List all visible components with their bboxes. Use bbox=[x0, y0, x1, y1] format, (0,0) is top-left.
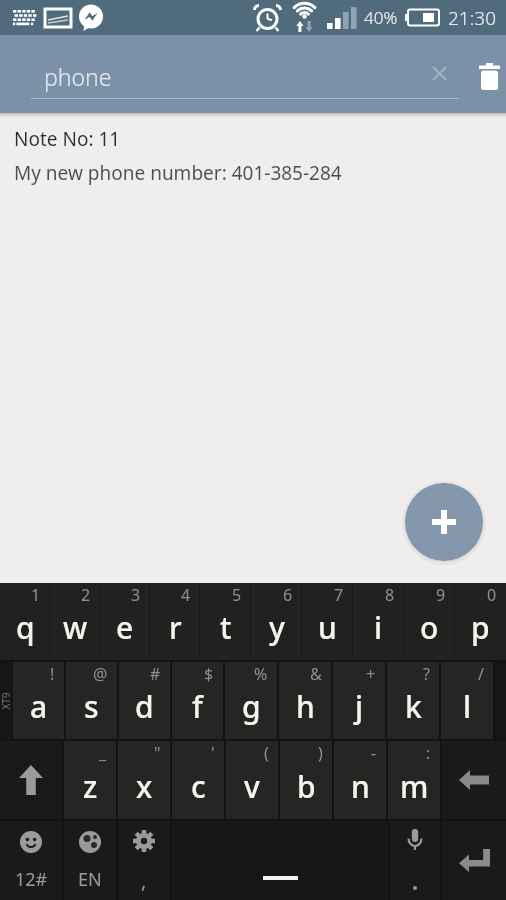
button[interactable]: 3 bbox=[100, 583, 150, 660]
staticText: $ bbox=[204, 663, 214, 685]
staticText: & bbox=[310, 663, 322, 685]
staticText: Note No: 11 bbox=[14, 126, 121, 152]
staticText: 6 bbox=[283, 584, 293, 606]
staticText: EN bbox=[78, 867, 102, 892]
staticText: u bbox=[318, 607, 337, 648]
staticText: " bbox=[154, 742, 161, 764]
staticText: 9 bbox=[436, 584, 446, 606]
staticText: @ bbox=[93, 663, 108, 685]
staticText: 21:30 bbox=[448, 5, 497, 31]
staticText: 0 bbox=[487, 584, 497, 606]
button[interactable] bbox=[474, 61, 504, 91]
button[interactable]: ( bbox=[226, 741, 278, 819]
staticText: / bbox=[478, 663, 484, 685]
button[interactable]: @ bbox=[66, 662, 117, 739]
button[interactable]: 9 bbox=[404, 583, 455, 660]
staticText: x bbox=[136, 766, 153, 807]
button[interactable]: 6 bbox=[251, 583, 302, 660]
staticText: # bbox=[150, 663, 161, 685]
staticText: : bbox=[426, 742, 431, 764]
staticText: p bbox=[471, 607, 490, 648]
staticText: % bbox=[254, 663, 268, 685]
staticText: ( bbox=[264, 742, 269, 764]
staticText: 5 bbox=[232, 584, 242, 606]
button[interactable]: / bbox=[441, 662, 493, 739]
staticText: e bbox=[116, 607, 134, 648]
button[interactable]: 8 bbox=[353, 583, 404, 660]
button[interactable]: ! bbox=[13, 662, 64, 739]
staticText: ' bbox=[211, 742, 215, 764]
button[interactable]: $ bbox=[172, 662, 223, 739]
button[interactable]: 7 bbox=[302, 583, 353, 660]
staticText: t bbox=[220, 607, 232, 648]
button[interactable] bbox=[442, 821, 506, 900]
button[interactable]: 0 bbox=[455, 583, 506, 660]
staticText: b bbox=[297, 766, 316, 807]
button[interactable]: EN bbox=[64, 821, 116, 900]
button[interactable]: " bbox=[118, 741, 170, 819]
staticText: 7 bbox=[334, 584, 344, 606]
button[interactable]: _ bbox=[64, 741, 116, 819]
staticText: r bbox=[169, 607, 182, 648]
button[interactable]: 1 bbox=[0, 583, 50, 660]
staticText: q bbox=[16, 607, 35, 648]
staticText: My new phone number: 401-385-284 bbox=[14, 160, 342, 186]
button[interactable]: 5 bbox=[200, 583, 251, 660]
staticText: 4 bbox=[181, 584, 191, 606]
button[interactable]: , bbox=[118, 821, 170, 900]
staticText: l bbox=[463, 686, 472, 727]
staticText: s bbox=[84, 686, 99, 727]
staticText: g bbox=[242, 686, 261, 727]
button[interactable]: & bbox=[279, 662, 331, 739]
button[interactable]: # bbox=[119, 662, 170, 739]
staticText: h bbox=[296, 686, 315, 727]
staticText: v bbox=[244, 766, 260, 807]
button[interactable]: 4 bbox=[150, 583, 200, 660]
button[interactable] bbox=[172, 821, 388, 900]
button[interactable]: ) bbox=[280, 741, 332, 819]
staticText: XT9 bbox=[0, 686, 13, 716]
staticText: ? bbox=[423, 663, 430, 685]
staticText: 2 bbox=[81, 584, 91, 606]
staticText: + bbox=[366, 663, 376, 685]
staticText: 8 bbox=[385, 584, 395, 606]
button[interactable] bbox=[405, 483, 483, 561]
staticText: a bbox=[30, 686, 48, 727]
staticText: _ bbox=[99, 742, 107, 764]
staticText: o bbox=[420, 607, 439, 648]
staticText: - bbox=[371, 742, 377, 764]
staticText: ) bbox=[318, 742, 323, 764]
staticText: k bbox=[405, 686, 422, 727]
staticText: 40% bbox=[364, 6, 398, 29]
button[interactable] bbox=[0, 741, 62, 819]
button[interactable]: ' bbox=[172, 741, 224, 819]
staticText: n bbox=[351, 766, 370, 807]
button[interactable]: - bbox=[334, 741, 386, 819]
button[interactable] bbox=[390, 821, 440, 900]
staticText: ! bbox=[50, 663, 55, 685]
staticText: i bbox=[374, 607, 383, 648]
button[interactable]: 2 bbox=[50, 583, 100, 660]
staticText: 1 bbox=[31, 584, 41, 606]
staticText: 12# bbox=[15, 867, 48, 892]
staticText: j bbox=[355, 686, 364, 727]
staticText: w bbox=[63, 607, 88, 648]
staticText: 3 bbox=[131, 584, 141, 606]
staticText: , bbox=[141, 867, 147, 894]
button[interactable]: ? bbox=[387, 662, 439, 739]
button[interactable] bbox=[425, 59, 453, 87]
button[interactable]: 12# bbox=[0, 821, 62, 900]
staticText: d bbox=[135, 686, 154, 727]
staticText: c bbox=[191, 766, 206, 807]
staticText: m bbox=[400, 766, 429, 807]
staticText: phone bbox=[44, 61, 112, 92]
button[interactable]: + bbox=[333, 662, 385, 739]
button[interactable] bbox=[442, 741, 506, 819]
button[interactable]: % bbox=[225, 662, 277, 739]
staticText: y bbox=[269, 607, 285, 648]
staticText: f bbox=[192, 686, 203, 727]
button[interactable]: : bbox=[388, 741, 440, 819]
staticText: z bbox=[83, 766, 98, 807]
